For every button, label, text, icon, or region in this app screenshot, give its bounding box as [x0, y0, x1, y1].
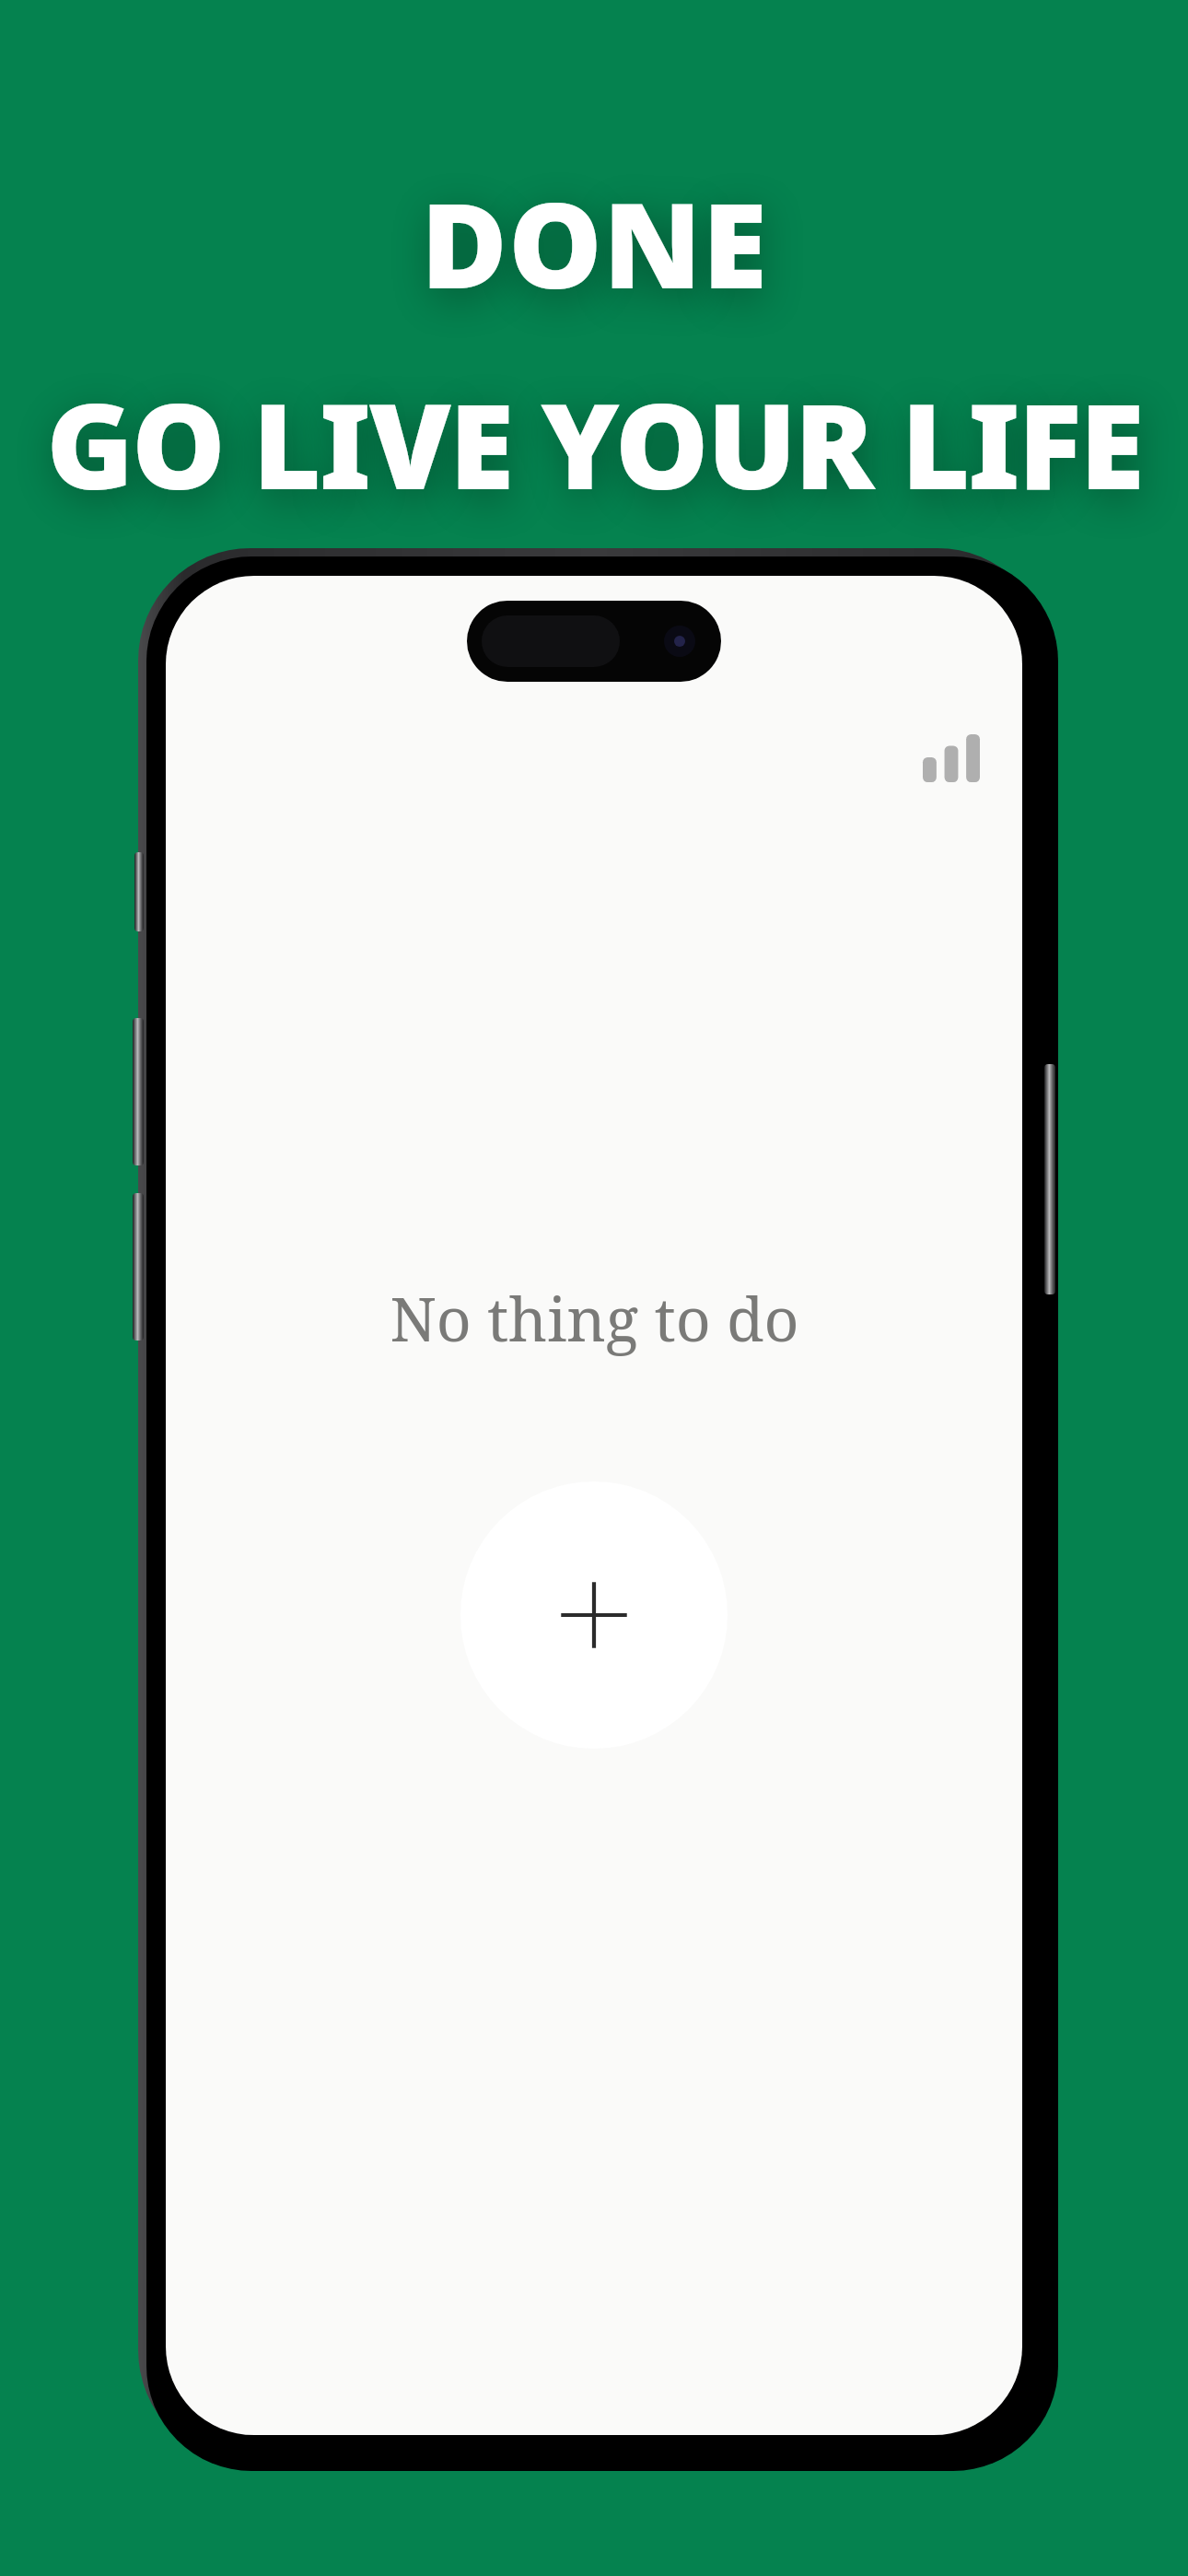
button[interactable]: Add task — [460, 1481, 728, 1749]
staticText: No thing to do — [390, 1276, 799, 1359]
staticText: DONE — [421, 162, 768, 322]
button[interactable]: Signal strength — [923, 734, 980, 782]
staticText: GO LIVE YOUR LIFE — [46, 363, 1143, 523]
